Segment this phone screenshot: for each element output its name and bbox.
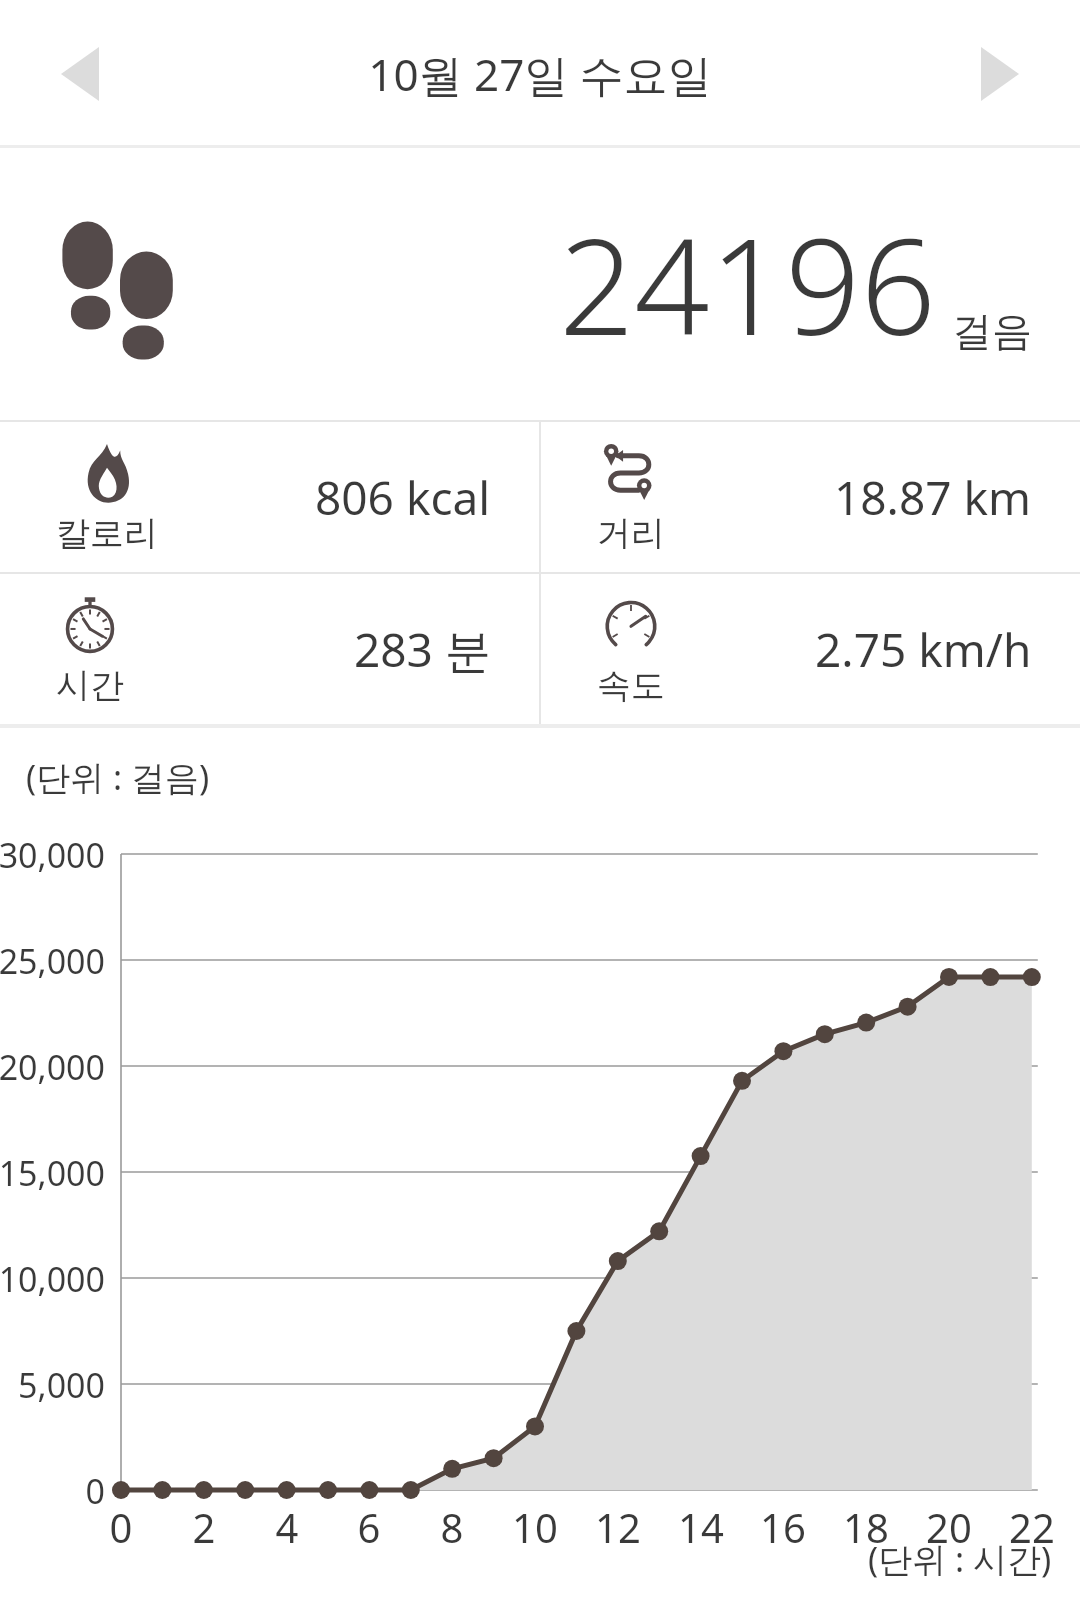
staticText: 시간 (56, 664, 124, 707)
staticText: 14 (671, 1500, 731, 1554)
staticText: 10월 27일 수요일 (368, 44, 712, 104)
staticText: 8 (422, 1500, 482, 1554)
staticText: 4 (257, 1500, 317, 1554)
staticText: 12 (588, 1500, 648, 1554)
staticText: 16 (753, 1500, 813, 1554)
staticText: 18.87 km (834, 466, 1032, 529)
staticText: 거리 (597, 512, 665, 555)
staticText: 속도 (597, 664, 665, 707)
button[interactable]: 시간 (0, 574, 539, 724)
staticText: 18 (836, 1500, 896, 1554)
staticText: 10,000 (0, 1256, 105, 1302)
button[interactable]: 24196 (0, 148, 1080, 420)
staticText: 20 (919, 1500, 979, 1554)
staticText: 30,000 (0, 832, 105, 878)
staticText: 2.75 km/h (815, 618, 1032, 681)
button[interactable]: 속도 (541, 574, 1080, 724)
button[interactable]: 거리 (541, 422, 1080, 572)
staticText: (단위 : 걸음) (26, 754, 210, 800)
staticText: 2 (174, 1500, 234, 1554)
button[interactable]: Previous day (40, 34, 120, 114)
staticText: 걸음 (952, 306, 1032, 356)
staticText: 0 (0, 1468, 105, 1514)
staticText: (단위 : 시간) (868, 1536, 1052, 1582)
staticText: 6 (339, 1500, 399, 1554)
staticText: 15,000 (0, 1150, 105, 1196)
button[interactable]: Next day (960, 34, 1040, 114)
staticText: 10 (505, 1500, 565, 1554)
staticText: 5,000 (0, 1362, 105, 1408)
staticText: 20,000 (0, 1044, 105, 1090)
button[interactable]: 칼로리 (0, 422, 539, 572)
staticText: 283 분 (354, 618, 491, 681)
staticText: 25,000 (0, 938, 105, 984)
staticText: 0 (91, 1500, 151, 1554)
staticText: 806 kcal (315, 466, 491, 529)
staticText: 24196 (559, 194, 936, 374)
staticText: 22 (1002, 1500, 1062, 1554)
staticText: 칼로리 (56, 512, 158, 555)
